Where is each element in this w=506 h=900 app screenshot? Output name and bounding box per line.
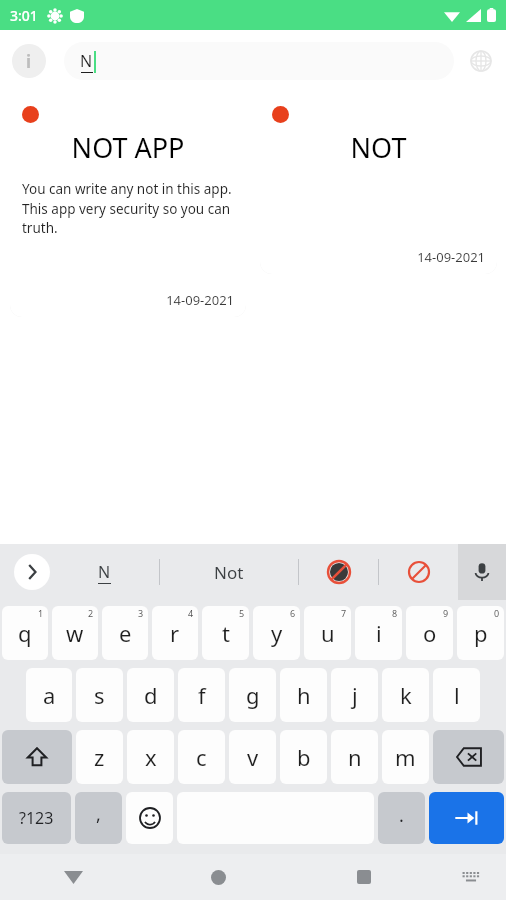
button[interactable]: z (76, 730, 123, 784)
staticText: k (400, 680, 412, 710)
staticText: v (247, 742, 259, 772)
button[interactable]: Emoji (126, 792, 173, 844)
staticText: p (474, 618, 488, 648)
staticText: N (80, 50, 93, 72)
staticText: r (170, 618, 180, 648)
button[interactable]: y (253, 606, 300, 660)
button[interactable]: Keyboard (436, 854, 506, 900)
button[interactable]: f (178, 668, 225, 722)
button[interactable]: , (75, 792, 122, 844)
button[interactable]: n (331, 730, 378, 784)
button[interactable]: o (406, 606, 453, 660)
button[interactable]: Language (468, 48, 494, 74)
staticText: NOT APP (22, 129, 234, 166)
button[interactable]: NOT (260, 96, 497, 274)
staticText: s (94, 680, 105, 710)
button[interactable]: N (64, 42, 454, 80)
staticText: e (119, 618, 132, 648)
staticText: , (96, 802, 101, 827)
button[interactable]: i (355, 606, 402, 660)
button[interactable]: m (382, 730, 429, 784)
button[interactable]: N (98, 561, 111, 584)
button[interactable]: c (178, 730, 225, 784)
staticText: x (145, 742, 157, 772)
staticText: f (198, 680, 206, 710)
button[interactable]: . (378, 792, 425, 844)
button[interactable]: l (433, 668, 480, 722)
staticText: . (399, 803, 404, 828)
button[interactable]: Back (0, 854, 146, 900)
staticText: y (271, 618, 283, 648)
staticText: c (196, 742, 207, 772)
staticText: You can write any not in this app. This … (22, 180, 234, 237)
staticText: 5 (239, 607, 245, 619)
button[interactable]: q (2, 606, 48, 660)
button[interactable]: Info (12, 44, 46, 78)
button[interactable]: Recents (291, 854, 436, 900)
staticText: 3:01 (10, 6, 38, 25)
button[interactable]: Enter (429, 792, 504, 844)
staticText: 8 (392, 607, 398, 619)
staticText: i (376, 618, 382, 648)
staticText: ?123 (19, 807, 54, 829)
button[interactable]: Shift (2, 730, 72, 784)
button[interactable]: No sticker (299, 561, 378, 583)
button[interactable]: Home (146, 854, 291, 900)
button[interactable]: t (202, 606, 249, 660)
button[interactable]: More suggestions (14, 554, 50, 590)
staticText: N (98, 561, 111, 583)
button[interactable]: s (76, 668, 123, 722)
staticText: d (144, 680, 158, 710)
button[interactable]: Backspace (433, 730, 504, 784)
staticText: m (395, 742, 416, 772)
button[interactable]: g (229, 668, 276, 722)
staticText: 7 (341, 607, 347, 619)
button[interactable]: Blocked (379, 561, 458, 583)
button[interactable]: NOT APP (10, 96, 246, 317)
staticText: 14-09-2021 (272, 248, 485, 266)
button[interactable]: j (331, 668, 378, 722)
button[interactable]: Voice input (458, 544, 506, 600)
staticText: w (66, 618, 84, 648)
button[interactable]: w (52, 606, 98, 660)
staticText: 4 (188, 607, 194, 619)
staticText: q (18, 618, 32, 648)
staticText: 6 (290, 607, 296, 619)
staticText: 1 (38, 607, 44, 619)
button[interactable]: r (152, 606, 198, 660)
button[interactable]: e (102, 606, 148, 660)
button[interactable]: h (280, 668, 327, 722)
button[interactable]: v (229, 730, 276, 784)
staticText: l (454, 680, 460, 710)
staticText: a (43, 680, 56, 710)
button[interactable]: b (280, 730, 327, 784)
staticText: 2 (88, 607, 94, 619)
button[interactable]: a (26, 668, 72, 722)
button[interactable]: u (304, 606, 351, 660)
staticText: 3 (138, 607, 144, 619)
staticText: 9 (443, 607, 449, 619)
button[interactable]: Not (214, 561, 244, 584)
button[interactable]: x (127, 730, 174, 784)
staticText: NOT (272, 129, 485, 166)
staticText: 0 (494, 607, 500, 619)
staticText: o (423, 618, 437, 648)
staticText: u (321, 618, 335, 648)
staticText: 14-09-2021 (22, 291, 234, 309)
button[interactable]: p (457, 606, 504, 660)
staticText: j (352, 680, 358, 710)
button[interactable]: ?123 (2, 792, 71, 844)
staticText: g (246, 680, 260, 710)
staticText: h (297, 680, 311, 710)
staticText: z (94, 742, 105, 772)
button[interactable]: k (382, 668, 429, 722)
staticText: n (348, 742, 362, 772)
staticText: i (26, 50, 32, 73)
staticText: t (222, 618, 230, 648)
button[interactable]: d (127, 668, 174, 722)
staticText: b (297, 742, 311, 772)
